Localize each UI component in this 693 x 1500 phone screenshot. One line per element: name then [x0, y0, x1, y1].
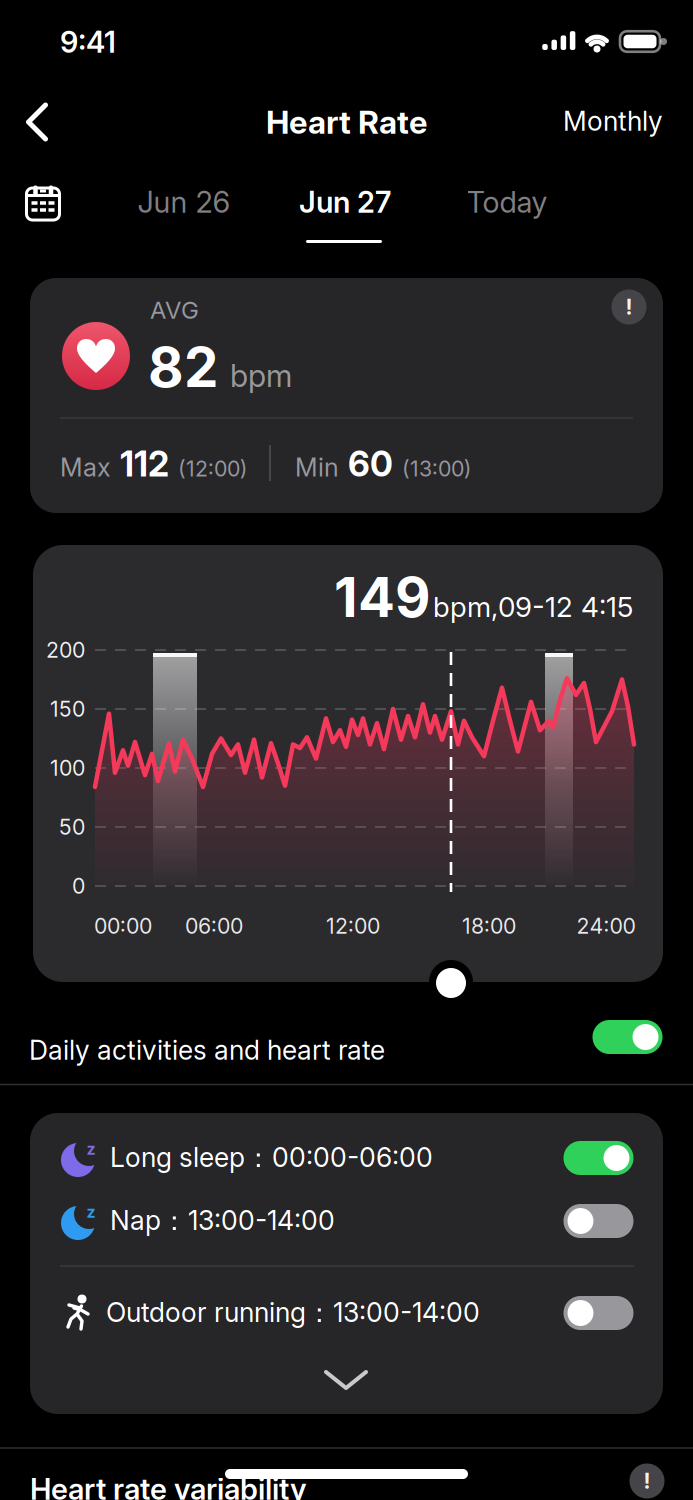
staticText: 150 [50, 696, 85, 722]
button[interactable]: Jun 26 [137, 185, 230, 219]
button[interactable]: Nap [563, 1204, 633, 1238]
staticText: 9:41 [60, 25, 116, 59]
staticText: Jun 27 [299, 185, 391, 219]
staticText: 50 [59, 814, 85, 840]
staticText: Heart rate variability [30, 1472, 307, 1500]
staticText: Min [295, 452, 339, 482]
staticText: 149 [334, 565, 431, 629]
staticText: (12:00) [178, 456, 248, 481]
staticText: 200 [46, 637, 85, 663]
staticText: 24:00 [576, 913, 635, 939]
staticText: Outdoor running：13:00-14:00 [106, 1296, 480, 1329]
button[interactable]: Today [466, 185, 547, 219]
staticText: Heart Rate [266, 103, 427, 141]
staticText: Monthly [563, 105, 663, 137]
staticText: bpm,09-12 4:15 [433, 590, 633, 623]
button[interactable]: Monthly [557, 99, 669, 143]
staticText: Long sleep：00:00-06:00 [110, 1141, 433, 1174]
button[interactable]: Calendar [24, 183, 62, 221]
staticText: Nap：13:00-14:00 [110, 1204, 335, 1237]
button[interactable]: Expand [318, 1364, 374, 1396]
staticText: 82 [148, 335, 218, 399]
staticText: 06:00 [185, 913, 243, 939]
staticText: Jun 26 [137, 185, 230, 219]
staticText: ! [625, 294, 632, 320]
staticText: z [86, 1203, 95, 1221]
staticText: 0 [72, 873, 85, 899]
staticText: 00:00 [94, 913, 152, 939]
staticText: AVG [150, 296, 199, 324]
staticText: 18:00 [462, 913, 516, 939]
staticText: Today [466, 185, 547, 219]
button[interactable]: Chart time slider [436, 968, 466, 998]
staticText: 60 [348, 444, 393, 484]
staticText: z [86, 1140, 95, 1158]
staticText: ! [643, 1468, 650, 1494]
button[interactable]: Jun 27 [299, 185, 391, 219]
button[interactable]: Outdoor running [563, 1296, 633, 1330]
staticText: 12:00 [326, 913, 380, 939]
button[interactable]: About average heart rate [611, 289, 646, 324]
staticText: Max [60, 452, 111, 482]
staticText: bpm [230, 358, 292, 394]
staticText: 112 [120, 444, 169, 484]
button[interactable]: Long sleep [563, 1141, 633, 1175]
staticText: 100 [50, 755, 85, 781]
button[interactable]: Daily activities and heart rate [592, 1020, 662, 1054]
staticText: (13:00) [402, 456, 472, 481]
staticText: Daily activities and heart rate [29, 1034, 385, 1066]
button[interactable]: About heart rate variability [629, 1463, 664, 1498]
button[interactable]: Back [18, 95, 55, 149]
